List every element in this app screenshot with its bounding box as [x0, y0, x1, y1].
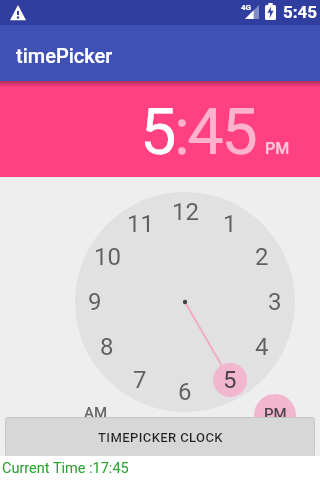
staticText: 5:45	[283, 2, 318, 22]
staticText: 5	[223, 366, 237, 394]
staticText: PM	[265, 139, 290, 158]
button[interactable]: TIMEPICKER CLOCK	[5, 417, 315, 457]
button[interactable]: PM	[250, 402, 300, 426]
staticText: PM	[264, 405, 287, 423]
staticText: 6	[178, 378, 192, 406]
staticText: 4G	[241, 3, 252, 12]
staticText: 1	[223, 210, 237, 238]
staticText: 5:45	[140, 94, 256, 170]
staticText: 11	[127, 210, 154, 238]
staticText: 3	[268, 288, 282, 316]
button[interactable]: 5:45	[140, 94, 290, 170]
staticText: 4	[255, 333, 269, 361]
staticText: Current Time :17:45	[2, 460, 129, 477]
button[interactable]: AM	[71, 401, 121, 425]
staticText: 9	[88, 288, 102, 316]
staticText: TIMEPICKER CLOCK	[98, 430, 223, 445]
staticText: timePicker	[16, 44, 113, 67]
staticText: AM	[84, 404, 108, 422]
staticText: 2	[255, 243, 269, 271]
staticText: 10	[94, 243, 121, 271]
staticText: 12	[172, 198, 199, 226]
staticText: 7	[133, 366, 147, 394]
staticText: 8	[100, 333, 114, 361]
